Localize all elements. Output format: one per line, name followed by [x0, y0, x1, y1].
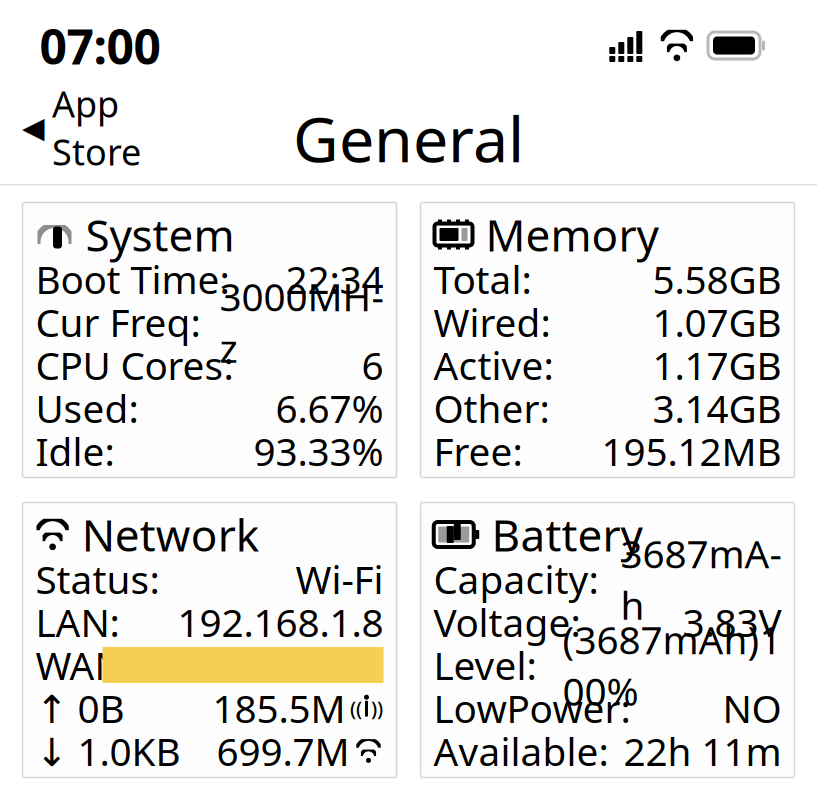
staticText: )) — [371, 695, 383, 721]
staticText: Other: — [433, 382, 549, 434]
staticText: CPU Cores: — [35, 339, 233, 391]
staticText: Memory — [485, 205, 658, 264]
button[interactable]: System — [22, 202, 396, 477]
staticText: 185.5M — [212, 682, 345, 734]
staticText: (( — [350, 695, 362, 721]
staticText: Level: — [433, 639, 536, 691]
staticText: 3687mAh — [620, 528, 781, 630]
staticText: Wi-Fi — [295, 553, 383, 605]
staticText: 699.7M — [216, 725, 349, 777]
staticText: 3.14GB — [652, 382, 781, 434]
staticText: Active: — [433, 339, 553, 391]
staticText: ◀ — [22, 111, 45, 144]
button[interactable]: ◀ — [0, 80, 222, 175]
staticText: LAN: — [35, 596, 119, 648]
staticText: System — [85, 205, 234, 264]
staticText: Free: — [433, 425, 522, 477]
staticText: 6.67% — [275, 382, 383, 434]
staticText: Cur Freq: — [35, 296, 200, 348]
staticText: Capacity: — [433, 553, 598, 605]
staticText: ↓ 1.0KB — [35, 725, 180, 777]
staticText: Used: — [35, 382, 138, 434]
button[interactable]: Memory — [420, 202, 794, 477]
staticText: 5.58GB — [652, 253, 781, 305]
staticText: Wired: — [433, 296, 550, 348]
staticText: 22h 11m — [623, 725, 781, 777]
staticText: Boot Time: — [35, 253, 229, 305]
staticText: 93.33% — [253, 425, 383, 477]
staticText: 22:34 — [285, 253, 383, 305]
staticText: Status: — [35, 553, 159, 605]
staticText: 07:00 — [39, 14, 160, 78]
staticText: ↑ 0B — [35, 682, 124, 734]
staticText: 3000MHz — [219, 271, 383, 373]
staticText: Idle: — [35, 425, 114, 477]
staticText: Network — [82, 505, 259, 564]
staticText: Battery — [491, 505, 642, 564]
staticText: LowPower: — [433, 682, 630, 734]
staticText: 3.83V — [682, 596, 781, 648]
staticText: Voltage: — [433, 596, 580, 648]
staticText: App Store — [52, 80, 141, 175]
button[interactable]: Network — [22, 502, 396, 777]
staticText: 192.168.1.8 — [177, 596, 383, 648]
staticText: NO — [722, 682, 781, 734]
staticText: 1.07GB — [652, 296, 781, 348]
staticText: Available: — [433, 725, 608, 777]
staticText: 1.17GB — [652, 339, 781, 391]
staticText: Total: — [433, 253, 531, 305]
staticText: General — [293, 96, 524, 180]
staticText: (3687mAh)100% — [562, 614, 781, 716]
staticText: 6 — [361, 339, 383, 391]
staticText: WAN: — [35, 639, 133, 691]
button[interactable]: Battery — [420, 502, 794, 777]
staticText: 195.12MB — [601, 425, 781, 477]
